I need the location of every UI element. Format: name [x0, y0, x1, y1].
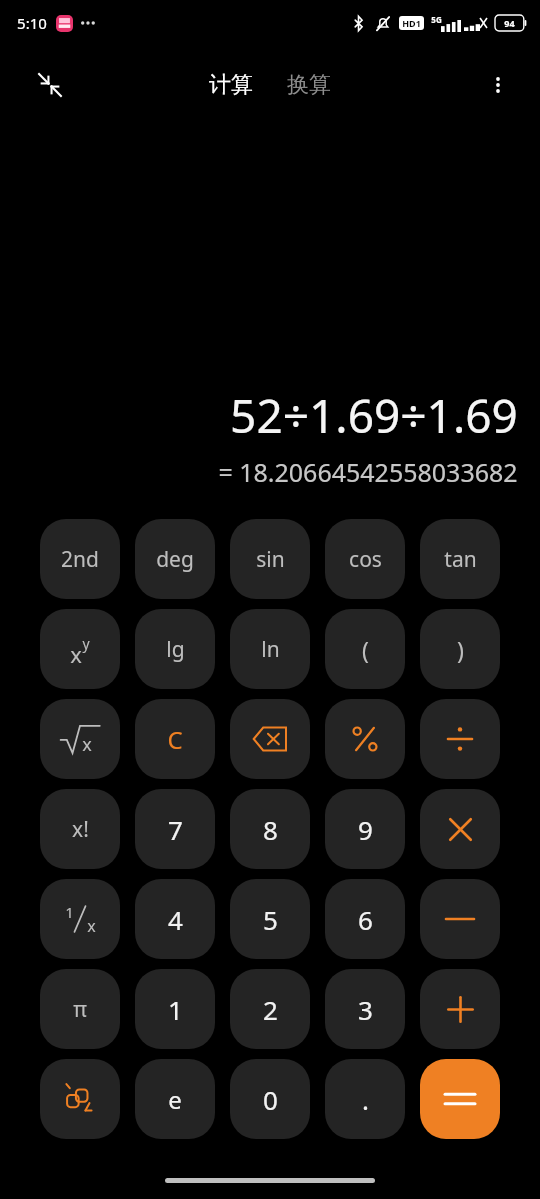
- staticText: sin: [256, 545, 285, 574]
- staticText: = 18.20664542558033682: [218, 455, 518, 489]
- staticText: 换算: [287, 71, 331, 99]
- staticText: cos: [349, 545, 382, 574]
- button[interactable]: Divide: [420, 699, 500, 779]
- button[interactable]: cos: [325, 519, 405, 599]
- button[interactable]: lg: [135, 609, 215, 689]
- button[interactable]: C: [135, 699, 215, 779]
- button[interactable]: Plus: [420, 969, 500, 1049]
- button[interactable]: x!: [40, 789, 120, 869]
- staticText: 计算: [209, 71, 253, 99]
- button[interactable]: 计算: [203, 67, 259, 103]
- staticText: ln: [261, 635, 280, 664]
- staticText: 4: [168, 902, 183, 937]
- button[interactable]: ): [420, 609, 500, 689]
- staticText: 5:10: [17, 13, 47, 33]
- button[interactable]: tan: [420, 519, 500, 599]
- button[interactable]: sin: [230, 519, 310, 599]
- staticText: (: [362, 634, 369, 665]
- button[interactable]: x to the power y: [40, 609, 120, 689]
- staticText: 1: [65, 902, 74, 922]
- staticText: x: [82, 732, 92, 757]
- button[interactable]: Equals: [420, 1059, 500, 1139]
- button[interactable]: Handwriting input: [40, 1059, 120, 1139]
- staticText: ): [457, 634, 464, 665]
- staticText: x!: [72, 815, 89, 844]
- staticText: .: [362, 1082, 369, 1117]
- button[interactable]: Percent: [325, 699, 405, 779]
- staticText: 8: [263, 812, 278, 847]
- button[interactable]: Multiply: [420, 789, 500, 869]
- staticText: e: [168, 1083, 182, 1116]
- button[interactable]: Square root: [40, 699, 120, 779]
- button[interactable]: ln: [230, 609, 310, 689]
- button[interactable]: 3: [325, 969, 405, 1049]
- button[interactable]: 6: [325, 879, 405, 959]
- button[interactable]: 9: [325, 789, 405, 869]
- staticText: C: [167, 723, 183, 756]
- button[interactable]: deg: [135, 519, 215, 599]
- button[interactable]: .: [325, 1059, 405, 1139]
- staticText: 7: [168, 812, 183, 847]
- button[interactable]: 5: [230, 879, 310, 959]
- button[interactable]: One over x: [40, 879, 120, 959]
- button[interactable]: (: [325, 609, 405, 689]
- staticText: x: [70, 639, 82, 669]
- staticText: deg: [156, 545, 194, 574]
- button[interactable]: 0: [230, 1059, 310, 1139]
- staticText: tan: [444, 545, 477, 574]
- staticText: 1: [168, 992, 183, 1027]
- button[interactable]: 2nd: [40, 519, 120, 599]
- button[interactable]: More options: [476, 63, 520, 107]
- button[interactable]: Backspace: [230, 699, 310, 779]
- button[interactable]: 7: [135, 789, 215, 869]
- button[interactable]: 1: [135, 969, 215, 1049]
- staticText: 0: [263, 1082, 278, 1117]
- staticText: lg: [166, 635, 185, 664]
- staticText: 9: [358, 812, 373, 847]
- staticText: HD1: [402, 17, 421, 29]
- staticText: 3: [358, 992, 373, 1027]
- staticText: x: [87, 915, 96, 937]
- staticText: 6: [358, 902, 373, 937]
- button[interactable]: Collapse: [28, 63, 72, 107]
- staticText: 52÷1.69÷1.69: [230, 384, 518, 447]
- button[interactable]: 2: [230, 969, 310, 1049]
- button[interactable]: e: [135, 1059, 215, 1139]
- staticText: 5: [263, 902, 278, 937]
- button[interactable]: 8: [230, 789, 310, 869]
- staticText: y: [82, 634, 90, 653]
- staticText: 2nd: [61, 545, 99, 574]
- staticText: 5G: [431, 14, 442, 25]
- button[interactable]: π: [40, 969, 120, 1049]
- staticText: 94: [504, 17, 515, 29]
- button[interactable]: 换算: [281, 67, 337, 103]
- button[interactable]: 4: [135, 879, 215, 959]
- staticText: π: [73, 995, 87, 1024]
- staticText: 2: [263, 992, 278, 1027]
- button[interactable]: Minus: [420, 879, 500, 959]
